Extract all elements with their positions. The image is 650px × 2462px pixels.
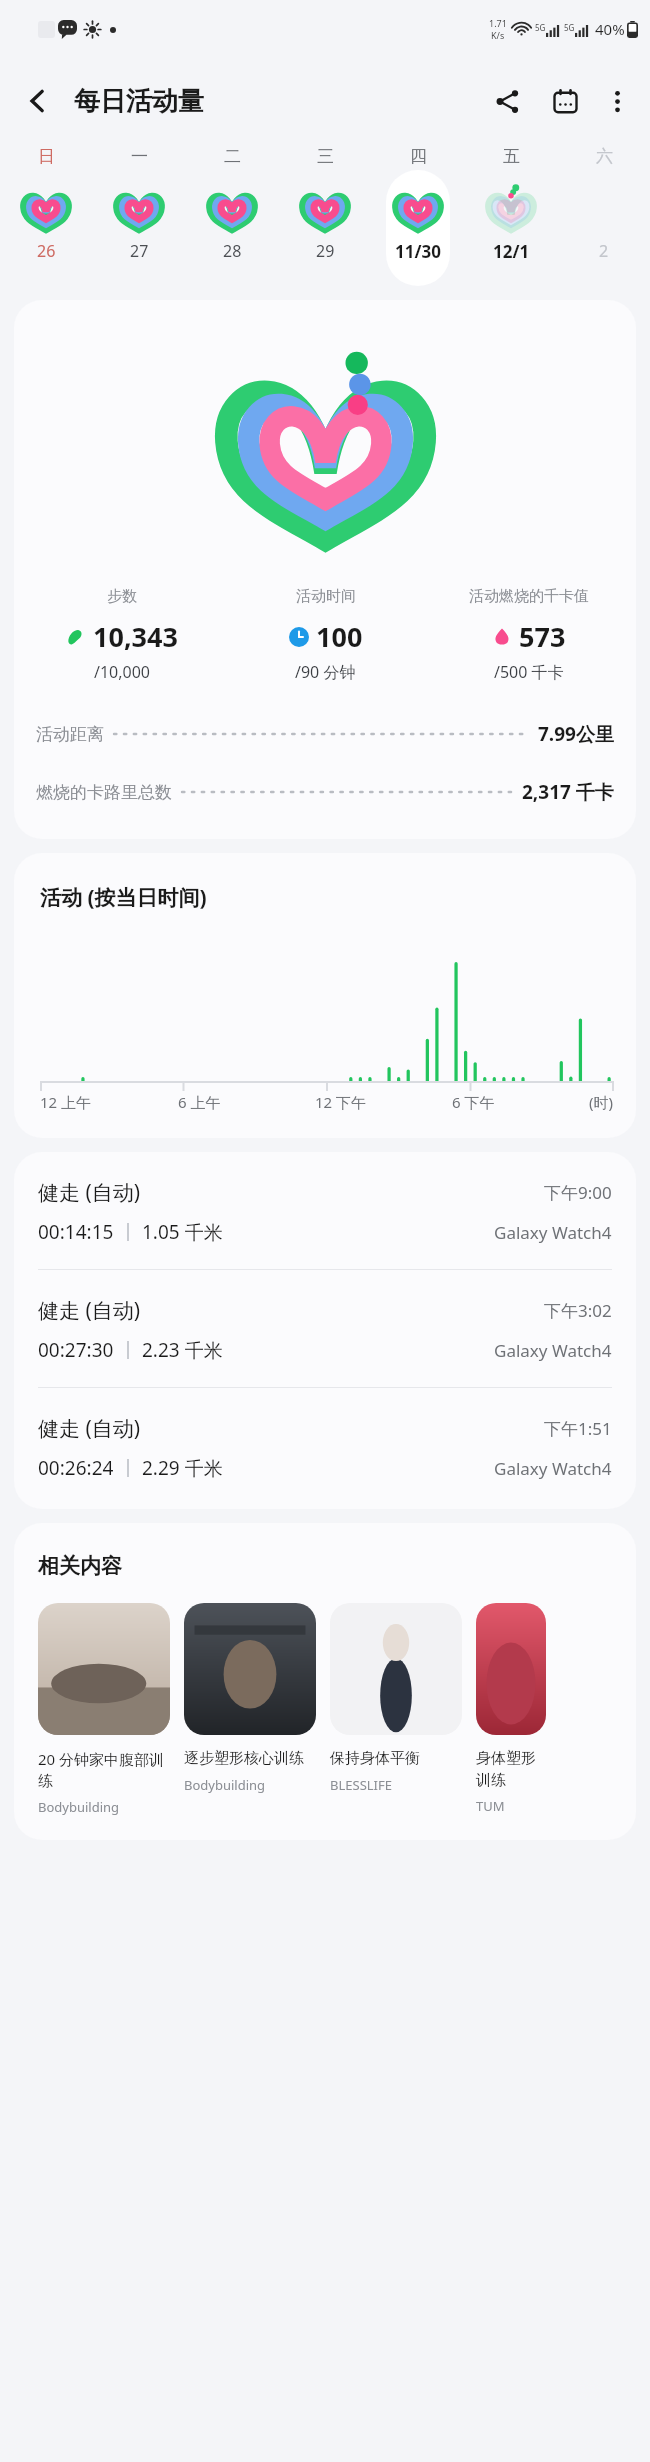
- button[interactable]: 活动距离: [36, 721, 614, 747]
- staticText: 身体塑形训练: [476, 1749, 546, 1789]
- staticText: 100: [316, 618, 363, 655]
- staticText: 相关内容: [38, 1553, 122, 1579]
- button[interactable]: Back: [12, 75, 64, 127]
- staticText: 健走 (自动): [38, 1296, 141, 1325]
- button[interactable]: 身体塑形训练: [476, 1603, 546, 1815]
- button[interactable]: 一: [92, 144, 185, 292]
- button[interactable]: 燃烧的卡路里总数: [36, 779, 614, 805]
- button[interactable]: 保持身体平衡: [330, 1603, 462, 1794]
- staticText: 7.99公里: [538, 721, 614, 747]
- staticText: 活动时间: [296, 587, 356, 606]
- staticText: TUM: [476, 1797, 505, 1815]
- staticText: (时): [589, 1092, 614, 1112]
- staticText: 27: [130, 240, 149, 262]
- button[interactable]: Calendar: [540, 76, 590, 126]
- staticText: 573: [519, 618, 566, 655]
- staticText: 10,343: [93, 618, 178, 655]
- staticText: 11/30: [395, 240, 441, 263]
- button[interactable]: 20 分钟家中腹部训练: [38, 1603, 170, 1816]
- staticText: 28: [223, 240, 242, 262]
- staticText: 12 下午: [315, 1092, 367, 1112]
- staticText: 6 上午: [178, 1092, 221, 1112]
- staticText: 2,317 千卡: [522, 779, 614, 805]
- staticText: 29: [316, 240, 335, 262]
- staticText: 00:26:24: [38, 1455, 114, 1481]
- button[interactable]: Share: [482, 76, 532, 126]
- staticText: 步数: [107, 587, 137, 606]
- staticText: 下午9:00: [544, 1181, 612, 1204]
- staticText: 日: [38, 146, 55, 167]
- staticText: 六: [596, 146, 613, 167]
- staticText: 每日活动量: [74, 85, 204, 118]
- staticText: 活动燃烧的千卡值: [469, 587, 589, 606]
- staticText: 健走 (自动): [38, 1414, 141, 1443]
- staticText: 五: [503, 146, 520, 167]
- staticText: /10,000: [94, 661, 151, 683]
- staticText: 2: [599, 240, 609, 262]
- staticText: 12 上午: [40, 1092, 92, 1112]
- button[interactable]: 步数: [20, 587, 224, 683]
- button[interactable]: 三: [278, 144, 371, 292]
- staticText: 20 分钟家中腹部训练: [38, 1749, 170, 1790]
- staticText: Galaxy Watch4: [494, 1339, 612, 1362]
- staticText: 健走 (自动): [38, 1178, 141, 1207]
- button[interactable]: More options: [592, 76, 642, 126]
- staticText: Bodybuilding: [184, 1776, 266, 1794]
- button[interactable]: 健走 (自动): [14, 1152, 636, 1270]
- staticText: /90 分钟: [295, 661, 356, 683]
- button[interactable]: 逐步塑形核心训练: [184, 1603, 316, 1794]
- button[interactable]: 六: [557, 144, 650, 292]
- staticText: Bodybuilding: [38, 1798, 120, 1816]
- staticText: 逐步塑形核心训练: [184, 1749, 304, 1768]
- staticText: 2.23 千米: [142, 1337, 223, 1363]
- staticText: /500 千卡: [494, 661, 564, 683]
- staticText: 二: [224, 146, 241, 167]
- staticText: 下午1:51: [544, 1417, 612, 1440]
- button[interactable]: 健走 (自动): [14, 1270, 636, 1388]
- staticText: Galaxy Watch4: [494, 1457, 612, 1480]
- staticText: 00:14:15: [38, 1219, 114, 1245]
- button[interactable]: 活动燃烧的千卡值: [427, 587, 630, 683]
- staticText: 00:27:30: [38, 1337, 114, 1363]
- staticText: 1.71: [489, 17, 507, 29]
- button[interactable]: 二: [185, 144, 278, 292]
- button[interactable]: 健走 (自动): [14, 1388, 636, 1505]
- staticText: 1.05 千米: [142, 1219, 223, 1245]
- staticText: K/s: [491, 29, 505, 41]
- staticText: 下午3:02: [544, 1299, 612, 1322]
- staticText: 三: [317, 146, 334, 167]
- staticText: 燃烧的卡路里总数: [36, 782, 172, 803]
- button[interactable]: 活动时间: [224, 587, 427, 683]
- staticText: Galaxy Watch4: [494, 1221, 612, 1244]
- staticText: BLESSLIFE: [330, 1776, 392, 1794]
- button[interactable]: 活动 (按当日时间): [14, 853, 636, 1138]
- staticText: 活动 (按当日时间): [40, 883, 207, 912]
- staticText: 12/1: [493, 240, 530, 263]
- staticText: 26: [37, 240, 56, 262]
- staticText: 6 下午: [452, 1092, 495, 1112]
- staticText: 40%: [595, 19, 625, 39]
- staticText: 2.29 千米: [142, 1455, 223, 1481]
- button[interactable]: 步数: [14, 300, 636, 839]
- button[interactable]: 四: [371, 144, 464, 292]
- button[interactable]: 日: [0, 144, 92, 292]
- staticText: 一: [131, 146, 148, 167]
- staticText: 保持身体平衡: [330, 1749, 420, 1768]
- staticText: 四: [410, 146, 427, 167]
- staticText: 活动距离: [36, 724, 104, 745]
- staticText: 5G: [564, 22, 575, 33]
- button[interactable]: 五: [464, 144, 557, 292]
- staticText: 5G: [535, 22, 546, 33]
